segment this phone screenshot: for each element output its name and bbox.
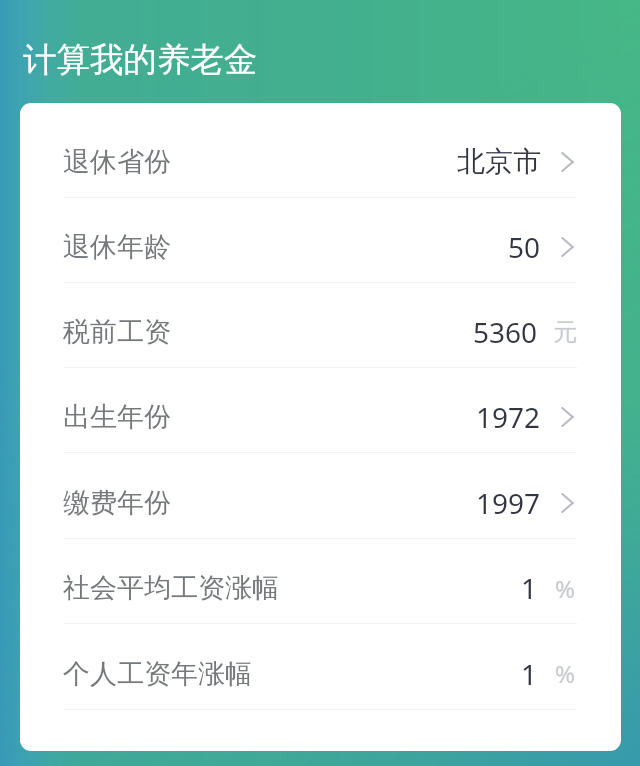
staticText: 社会平均工资涨幅 [63,571,279,605]
staticText: 1997 [476,484,541,522]
staticText: 5360 [473,313,538,351]
staticText: % [555,657,575,690]
button[interactable]: 出生年份 [20,368,621,452]
button[interactable]: 退休省份 [20,112,621,197]
staticText: 出生年份 [63,400,171,434]
staticText: 退休省份 [63,145,171,179]
button[interactable]: 缴费年份 [20,453,621,538]
button[interactable]: 退休年龄 [20,198,621,282]
staticText: 退休年龄 [63,230,171,264]
other: 选择退休省份 [555,147,580,177]
staticText: 1 [521,655,538,693]
staticText: % [555,572,575,605]
staticText: 1 [521,569,538,607]
other: 选择出生年份 [555,402,580,432]
staticText: 个人工资年涨幅 [63,657,252,691]
staticText: 50 [508,228,541,266]
button[interactable]: 个人工资年涨幅 [20,624,621,709]
button[interactable]: 税前工资 [20,283,621,367]
other: 选择缴费年份 [555,488,580,518]
staticText: 缴费年份 [63,486,171,520]
button[interactable]: 社会平均工资涨幅 [20,539,621,623]
staticText: 北京市 [457,144,541,179]
staticText: 1972 [476,398,541,436]
staticText: 元 [553,317,576,347]
other: 选择退休年龄 [555,232,580,262]
staticText: 税前工资 [63,315,171,349]
staticText: 计算我的养老金 [23,39,258,81]
